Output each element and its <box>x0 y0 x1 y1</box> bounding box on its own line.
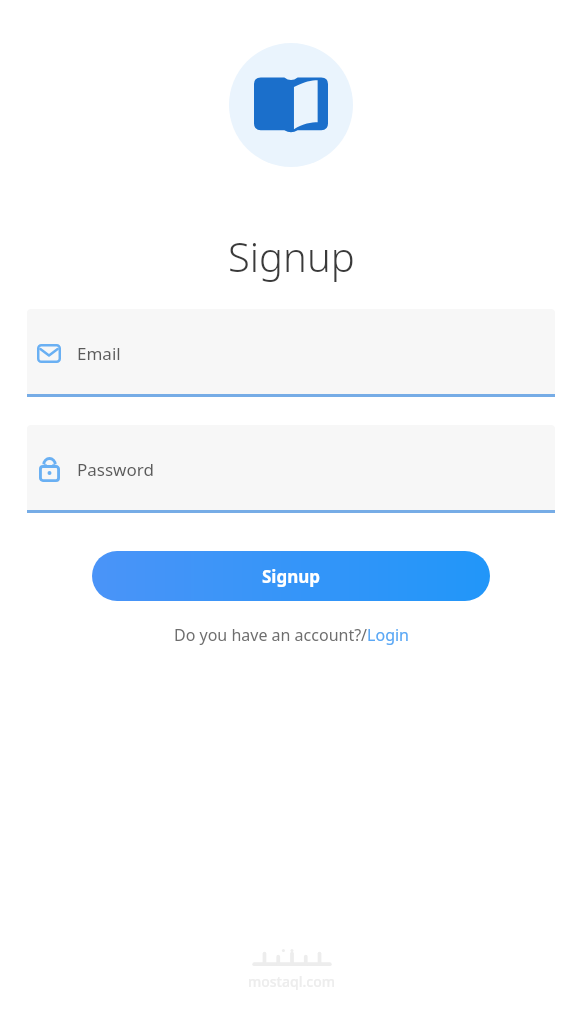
button[interactable]: Signup <box>92 551 490 601</box>
other: Password <box>39 457 60 482</box>
other: Book logo <box>254 74 328 136</box>
staticText: Signup <box>262 565 321 588</box>
staticText: Password <box>77 458 154 481</box>
other: Email <box>37 344 61 363</box>
button[interactable]: Do you have an account?/Login <box>168 621 415 649</box>
staticText: Signup <box>228 229 355 283</box>
staticText: Do you have an account?/Login <box>174 624 409 646</box>
button[interactable]: Email <box>27 309 555 397</box>
staticText: Email <box>77 342 121 365</box>
button[interactable]: Password <box>27 425 555 513</box>
staticText: mostaql.com <box>248 972 335 991</box>
